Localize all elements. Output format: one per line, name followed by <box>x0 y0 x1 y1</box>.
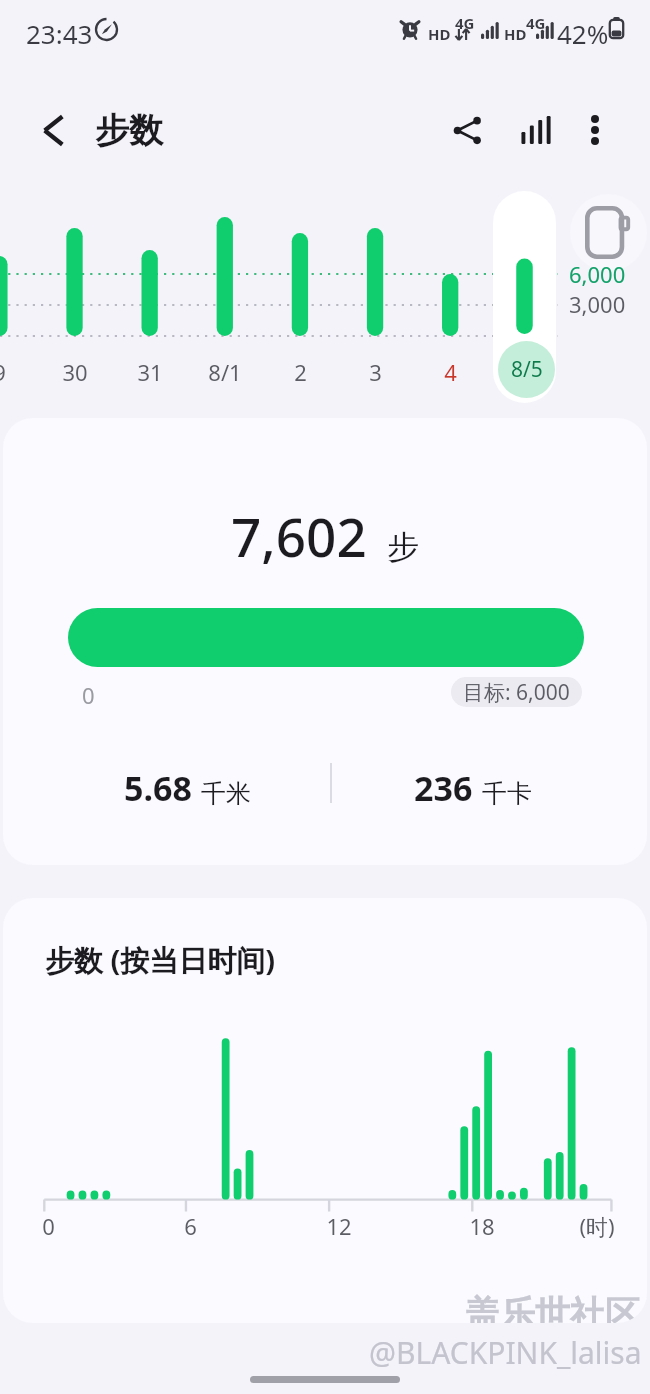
staticText: 23:43 <box>26 16 93 51</box>
button[interactable]: More options <box>564 99 626 161</box>
staticText: 4G <box>526 13 546 33</box>
staticText: 18 <box>469 1211 495 1241</box>
staticText: (时) <box>579 1211 615 1241</box>
staticText: 8/1 <box>208 357 242 387</box>
staticText: 目标: 6,000 <box>463 678 570 707</box>
staticText: 8/5 <box>511 355 543 384</box>
staticText: 236 <box>414 765 473 811</box>
staticText: 5.68 <box>124 765 192 811</box>
staticText: HD <box>428 24 451 44</box>
staticText: 3 <box>369 357 382 387</box>
staticText: 3,000 <box>569 289 626 319</box>
staticText: 0 <box>82 680 95 710</box>
staticText: 4 <box>444 357 457 387</box>
staticText: 31 <box>137 357 163 387</box>
staticText: 6 <box>184 1211 197 1241</box>
staticText: 42% <box>557 16 609 51</box>
staticText: 6,000 <box>569 259 626 289</box>
staticText: @BLACKPINK_lalisa <box>369 1332 642 1373</box>
staticText: 2 <box>294 357 307 387</box>
staticText: 步数 (按当日时间) <box>45 940 276 980</box>
staticText: 千卡 <box>482 778 532 809</box>
staticText: 12 <box>326 1211 352 1241</box>
staticText: 步 <box>387 527 419 567</box>
button[interactable]: Show chart <box>501 97 567 163</box>
staticText: 步数 <box>95 109 163 152</box>
staticText: 0 <box>42 1211 55 1241</box>
staticText: HD <box>504 24 527 44</box>
button[interactable]: 8/5 <box>493 191 556 403</box>
button[interactable]: Back <box>20 97 86 163</box>
staticText: 30 <box>62 357 88 387</box>
staticText: 盖乐世社区 <box>465 1292 640 1323</box>
staticText: 千米 <box>201 778 251 809</box>
button[interactable]: Share <box>434 97 500 163</box>
staticText: 4G <box>455 13 475 33</box>
staticText: 7,602 <box>231 500 367 572</box>
staticText: 9 <box>0 357 6 387</box>
